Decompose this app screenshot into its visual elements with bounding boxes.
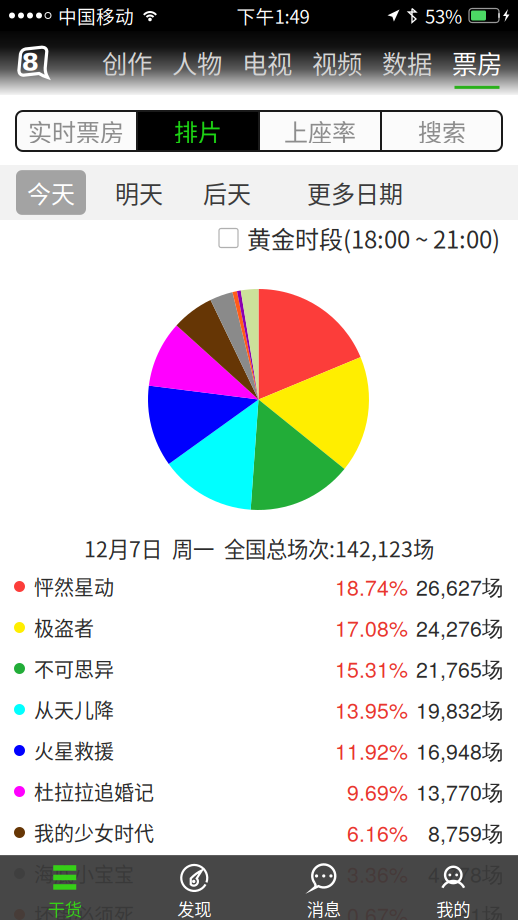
button[interactable]: 上座率	[260, 111, 380, 151]
staticText: 搜索	[418, 114, 466, 148]
button[interactable]: 后天	[192, 170, 262, 215]
staticText: 电视	[242, 44, 292, 81]
staticText: 数据	[382, 44, 432, 81]
staticText: 24,276场	[416, 612, 503, 643]
staticText: 后天	[203, 175, 251, 210]
staticText: 视频	[312, 44, 362, 81]
staticText: 极盗者	[34, 613, 94, 642]
staticText: 发现	[177, 896, 211, 920]
button[interactable]: 今天	[16, 170, 86, 215]
staticText: 13.95%	[335, 694, 408, 725]
staticText: 951场	[446, 899, 503, 920]
staticText: 杜拉拉追婚记	[34, 777, 154, 806]
staticText: 19,832场	[416, 694, 503, 725]
staticText: 海底小宝宝	[34, 859, 134, 888]
staticText: 9.69%	[347, 776, 408, 807]
staticText: 票房	[452, 44, 502, 81]
staticText: 8,759场	[428, 817, 503, 848]
staticText: 17.08%	[335, 612, 408, 643]
staticText: 创作	[102, 44, 152, 81]
staticText: 下午1:49	[236, 2, 309, 29]
button[interactable]: 实时票房	[16, 111, 136, 151]
staticText: 18.74%	[335, 571, 408, 602]
staticText: 上座率	[284, 114, 356, 148]
button[interactable]: 明天	[104, 170, 174, 215]
staticText: 26,627场	[416, 571, 503, 602]
staticText: 黄金时段(18:00 ~ 21:00)	[247, 221, 500, 255]
staticText: 坏蛋必须死	[34, 900, 134, 920]
button[interactable]: 搜索	[382, 111, 502, 151]
button[interactable]: 创作	[92, 31, 162, 95]
staticText: 3.36%	[347, 858, 408, 889]
staticText: 8	[21, 47, 39, 77]
staticText: 16,948场	[416, 735, 503, 766]
button[interactable]: 排片	[138, 111, 258, 151]
staticText: 11.92%	[335, 735, 408, 766]
button[interactable]: 更多日期	[296, 170, 414, 215]
button[interactable]: 视频	[302, 31, 372, 95]
staticText: 21,765场	[416, 653, 503, 684]
button[interactable]: 黄金时段(18:00 ~ 21:00)	[219, 221, 500, 255]
button[interactable]: 消息	[259, 855, 388, 920]
staticText: 更多日期	[307, 175, 403, 210]
button[interactable]: 发现	[129, 855, 259, 920]
staticText: 53%	[425, 2, 462, 29]
button[interactable]: 首页	[4, 31, 60, 95]
staticText: 明天	[115, 175, 163, 210]
button[interactable]: 电视	[232, 31, 302, 95]
staticText: 不可思异	[34, 654, 114, 683]
staticText: 15.31%	[335, 653, 408, 684]
staticText: 0.67%	[347, 899, 408, 920]
staticText: 火星救援	[34, 736, 114, 765]
staticText: 实时票房	[28, 114, 124, 148]
staticText: 消息	[307, 896, 341, 920]
staticText: 我的少女时代	[34, 818, 154, 847]
staticText: 怦然星动	[34, 572, 114, 601]
staticText: 13,770场	[416, 776, 503, 807]
staticText: 排片	[174, 114, 222, 148]
staticText: 6.16%	[347, 817, 408, 848]
staticText: 人物	[172, 44, 222, 81]
button[interactable]: 票房	[442, 31, 512, 95]
staticText: 从天儿降	[34, 695, 114, 724]
button[interactable]: 人物	[162, 31, 232, 95]
staticText: 今天	[27, 175, 75, 210]
button[interactable]: 数据	[372, 31, 442, 95]
staticText: 干货	[48, 896, 82, 920]
staticText: 我的	[436, 896, 470, 920]
staticText: 12月7日 周一 全国总场次:142,123场	[84, 533, 434, 563]
button[interactable]: 我的	[388, 855, 518, 920]
staticText: 中国移动	[58, 2, 134, 29]
button[interactable]: 干货	[0, 855, 129, 920]
staticText: 4,778场	[428, 858, 503, 889]
